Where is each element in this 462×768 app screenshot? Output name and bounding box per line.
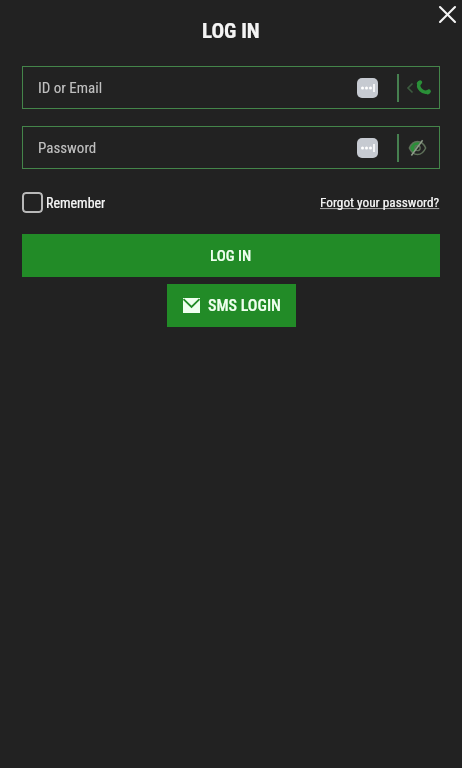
button[interactable]: Remember [22,192,106,213]
staticText: LOG IN [210,247,252,265]
button[interactable]: Show password [399,126,440,169]
button[interactable]: Autofill [357,138,378,158]
staticText: SMS LOGIN [208,296,281,315]
button[interactable]: Autofill [357,78,378,98]
staticText: Password [38,139,357,157]
staticText: Remember [46,195,106,211]
button[interactable]: Forgot your password? [320,195,462,211]
button[interactable]: Close [432,0,462,29]
staticText: ID or Email [38,79,357,97]
button[interactable]: LOG IN [22,234,440,277]
button[interactable]: SMS LOGIN [167,284,296,327]
button[interactable]: Login with phone [399,66,440,109]
staticText: LOG IN [202,19,260,44]
